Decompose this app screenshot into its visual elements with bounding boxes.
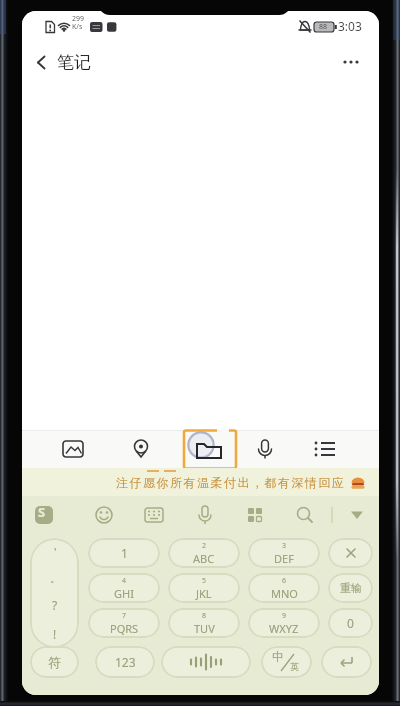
staticText: ' [54, 544, 57, 559]
staticText: S [38, 503, 46, 521]
staticText: ? [52, 597, 58, 613]
staticText: ! [53, 626, 57, 642]
staticText: 123 [115, 654, 136, 670]
staticText: 3:03 [338, 18, 362, 34]
staticText: DEF [274, 551, 294, 566]
button[interactable] [73, 496, 124, 534]
button[interactable]: ' [30, 538, 79, 648]
button[interactable] [124, 496, 175, 534]
button[interactable]: 7 [88, 608, 160, 638]
staticText: JKL [196, 586, 212, 601]
button[interactable]: 重输 [328, 573, 373, 603]
button[interactable] [321, 646, 372, 678]
staticText: ABC [193, 551, 215, 566]
button[interactable] [308, 430, 379, 468]
button[interactable]: 4 [88, 573, 160, 603]
staticText: 。 [50, 572, 60, 585]
staticText: 笔记 [57, 52, 91, 73]
staticText: 7 [122, 611, 127, 621]
staticText: WXYZ [269, 621, 299, 636]
button[interactable] [22, 430, 94, 468]
button[interactable]: 1 [88, 538, 160, 568]
button[interactable]: 6 [248, 573, 320, 603]
button[interactable] [328, 538, 373, 568]
button[interactable]: 0 [328, 608, 373, 638]
button[interactable] [166, 430, 237, 468]
staticText: GHI [114, 586, 134, 601]
button[interactable]: 2 [168, 538, 240, 568]
staticText: 0 [347, 615, 354, 631]
button[interactable]: 中 [261, 646, 312, 678]
button[interactable]: 符 [30, 646, 79, 678]
staticText: 中 [272, 649, 284, 664]
staticText: TUV [194, 621, 215, 636]
staticText: 4 [122, 576, 127, 586]
staticText: 1 [121, 545, 128, 561]
button[interactable]: 3 [248, 538, 320, 568]
button[interactable] [237, 430, 308, 468]
staticText: 9 [282, 611, 287, 621]
staticText: 3 [282, 541, 287, 551]
staticText: 6 [282, 576, 287, 586]
staticText: 2 [202, 541, 207, 551]
button[interactable] [343, 53, 361, 71]
staticText: PQRS [110, 621, 139, 636]
button[interactable]: 8 [168, 608, 240, 638]
staticText: 符 [48, 654, 61, 670]
staticText: MNO [271, 586, 298, 601]
button[interactable] [328, 496, 379, 534]
button[interactable] [94, 430, 166, 468]
staticText: 注仔愿你所有温柔付出，都有深情回应 [116, 475, 346, 490]
button[interactable] [226, 496, 277, 534]
button[interactable]: 注仔愿你所有温柔付出，都有深情回应 [22, 468, 379, 496]
button[interactable]: 9 [248, 608, 320, 638]
staticText: 88 [319, 22, 328, 32]
button[interactable]: 笔记 [34, 52, 91, 73]
button[interactable] [22, 496, 73, 534]
button[interactable]: 123 [95, 646, 155, 678]
button[interactable] [175, 496, 226, 534]
button[interactable] [277, 496, 328, 534]
staticText: 299 K/s [72, 14, 85, 31]
staticText: 英 [290, 661, 299, 672]
button[interactable] [161, 646, 251, 678]
button[interactable]: 5 [168, 573, 240, 603]
staticText: 8 [202, 611, 207, 621]
staticText: 重输 [340, 581, 362, 595]
staticText: 5 [202, 576, 207, 586]
